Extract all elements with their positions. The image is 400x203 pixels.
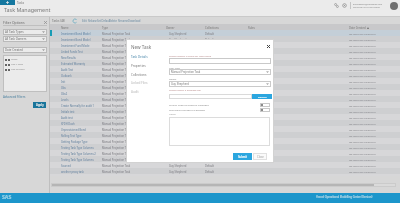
- staticText: Initials test: [61, 110, 101, 114]
- button[interactable]: Rename: [118, 19, 129, 23]
- staticText: Testing Task Type Columns: [61, 146, 101, 150]
- button[interactable]: Create Normally for audit 1: [50, 102, 400, 108]
- button[interactable]: Manual Projection Task: [169, 69, 271, 75]
- staticText: dd-mm-yyyy hh:mm:ss: [349, 56, 393, 59]
- button[interactable]: Date Created: [3, 47, 47, 53]
- staticText: Default: [205, 98, 243, 102]
- button[interactable]: [169, 58, 271, 64]
- staticText: Rolling Test Type: [61, 134, 101, 138]
- button[interactable]: Tasks tab: [0, 0, 15, 5]
- staticText: Apply: [36, 103, 44, 107]
- button[interactable]: Getting Package Type: [50, 138, 400, 144]
- button[interactable]: Collections: [131, 71, 161, 79]
- staticText: Manual Projection Task: [102, 122, 164, 126]
- button[interactable]: Last 7 Days: [5, 63, 24, 66]
- button[interactable]: Levels: [50, 96, 400, 102]
- staticText: Manual Projection Task: [102, 152, 164, 156]
- staticText: dd-mm-yyyy hh:mm:ss: [349, 38, 393, 41]
- button[interactable]: another proxy task: [50, 168, 400, 174]
- button[interactable]: Set Default: [97, 19, 111, 23]
- staticText: Manual Projection Task: [102, 44, 164, 48]
- staticText: Investment Bond Model: [61, 38, 101, 42]
- staticText: dd-mm-yyyy hh:mm:ss: [349, 32, 393, 35]
- button[interactable]: Refresh: [73, 19, 77, 23]
- button[interactable]: Today: [5, 58, 18, 61]
- button[interactable]: [169, 94, 252, 99]
- staticText: Init: [61, 80, 101, 84]
- button[interactable]: New Results: [50, 54, 400, 60]
- button[interactable]: Delete: [109, 19, 117, 23]
- button[interactable]: Close filters: [44, 21, 47, 24]
- staticText: Manual Projection Task: [102, 170, 164, 174]
- button[interactable]: Initials test: [50, 108, 400, 114]
- staticText: Please select a package file: [169, 88, 201, 91]
- button[interactable]: Task Details: [131, 53, 161, 61]
- button[interactable]: Browse: [252, 94, 272, 99]
- staticText: Guy Shepherd: [169, 32, 203, 36]
- staticText: dd-mm-yyyy hh:mm:ss: [349, 146, 393, 149]
- button[interactable]: Source Code included in Package?: [169, 102, 270, 107]
- button[interactable]: Advanced Filters: [3, 95, 26, 99]
- button[interactable]: Testing Task Type Columns: [50, 144, 400, 150]
- staticText: dd-mm-yyyy hh:mm:ss: [349, 92, 393, 95]
- staticText: Manual Projection Task: [102, 140, 164, 144]
- button[interactable]: Download: [128, 19, 141, 23]
- button[interactable]: Testing Task Type Columns: [50, 156, 400, 162]
- staticText: Notes: [169, 112, 176, 115]
- staticText: All Task Owners: [5, 37, 27, 41]
- button[interactable]: Estimated Warranty: [50, 60, 400, 66]
- button[interactable]: Investment Bond Model: [50, 30, 400, 36]
- staticText: Browse: [258, 95, 267, 98]
- staticText: Audit Test: [61, 68, 101, 72]
- staticText: Manual Projection Task: [102, 62, 164, 66]
- button[interactable]: Audit: [131, 88, 161, 96]
- button[interactable]: Obs2: [50, 90, 400, 96]
- button[interactable]: Last 30 Days: [5, 68, 25, 71]
- button[interactable]: SAS: [2, 193, 12, 200]
- button[interactable]: Test Data included in Package?: [169, 107, 270, 112]
- button[interactable]: Edit: [82, 19, 87, 23]
- button[interactable]: Submit: [233, 153, 252, 160]
- button[interactable]: All Task Owners: [3, 36, 47, 42]
- button[interactable]: Outbank: [50, 72, 400, 78]
- staticText: Estimated Warranty: [61, 62, 101, 66]
- button[interactable]: Account: [390, 2, 398, 10]
- staticText: Guy Shepherd: [169, 110, 203, 114]
- button[interactable]: Audit Test: [50, 66, 400, 72]
- button[interactable]: Testing Task Type Columns 2: [50, 150, 400, 156]
- button[interactable]: Properties: [131, 62, 161, 70]
- staticText: Default: [205, 62, 243, 66]
- button[interactable]: Audit test: [50, 114, 400, 120]
- button[interactable]: Rolling Test Type: [50, 132, 400, 138]
- button[interactable]: Linked Funds Test: [50, 48, 400, 54]
- staticText: Collections: [131, 73, 147, 77]
- staticText: dd-mm-yyyy hh:mm:ss: [349, 164, 393, 167]
- staticText: Create Normally for audit 1: [61, 104, 101, 108]
- button[interactable]: Close: [265, 43, 271, 49]
- button[interactable]: Apply: [33, 102, 46, 108]
- button[interactable]: Rebase: [88, 19, 97, 23]
- staticText: Hexcel Operational Modelling Centre (Ver…: [316, 195, 373, 199]
- staticText: Default: [205, 56, 243, 60]
- staticText: another proxy task: [61, 170, 101, 174]
- button[interactable]: All Task Types: [3, 29, 47, 35]
- button[interactable]: Close: [253, 153, 267, 160]
- button[interactable]: Linked Files: [131, 79, 161, 87]
- button[interactable]: Investment Fund Mode: [50, 42, 400, 48]
- button[interactable]: Links: [334, 3, 339, 8]
- button[interactable]: Unprovisioned Bond: [50, 126, 400, 132]
- staticText: Guy Shepherd: [169, 104, 203, 108]
- staticText: Levels: [61, 98, 101, 102]
- button[interactable]: Settings: [342, 3, 347, 8]
- button[interactable]: XFDH Dash: [50, 120, 400, 126]
- button[interactable]: Init: [50, 78, 400, 84]
- button[interactable]: Sourced: [50, 162, 400, 168]
- staticText: Default: [205, 80, 243, 84]
- button[interactable]: Obs: [50, 84, 400, 90]
- button[interactable]: Guy Shepherd: [169, 81, 271, 87]
- button[interactable]: [169, 117, 270, 146]
- button[interactable]: Investment Bond Model: [50, 36, 400, 42]
